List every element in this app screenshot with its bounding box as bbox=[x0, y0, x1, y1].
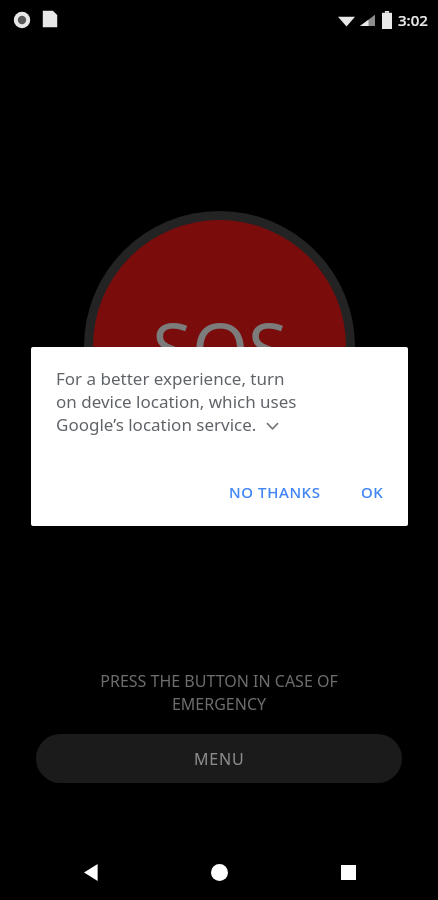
staticText: on device location, which uses bbox=[56, 390, 297, 413]
staticText: OK bbox=[361, 482, 384, 502]
button[interactable]: MENU bbox=[36, 734, 402, 783]
staticText: SOS bbox=[152, 298, 288, 396]
button[interactable]: OK bbox=[353, 476, 392, 508]
staticText: For a better experience, turn bbox=[56, 367, 285, 390]
button[interactable]: Home bbox=[191, 845, 247, 900]
staticText: Google’s location service. bbox=[56, 413, 257, 436]
staticText: 3:02 bbox=[398, 10, 428, 30]
button[interactable]: Recent apps bbox=[320, 845, 376, 900]
staticText: NO THANKS bbox=[229, 482, 321, 502]
button[interactable]: Back bbox=[62, 845, 118, 900]
staticText: MENU bbox=[194, 748, 245, 770]
button[interactable]: Expand details bbox=[264, 417, 280, 433]
staticText: PRESS THE BUTTON IN CASE OF EMERGENCY bbox=[58, 670, 380, 715]
button[interactable]: NO THANKS bbox=[221, 476, 329, 508]
button[interactable]: SOS emergency button bbox=[84, 211, 355, 482]
